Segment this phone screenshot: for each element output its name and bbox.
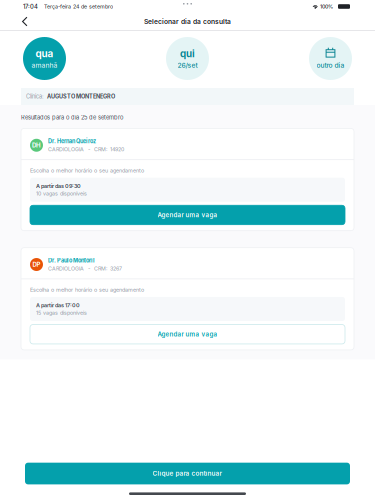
staticText: A partir das 17:00	[36, 302, 80, 308]
staticText: Clique para continuar	[152, 470, 222, 477]
staticText: amanhã	[31, 61, 57, 69]
button[interactable]: outro dia	[309, 37, 352, 80]
button[interactable]: qua amanhã	[23, 37, 66, 80]
button[interactable]: qui 26/set	[166, 37, 209, 80]
staticText: Dr. Paulo Montoril	[48, 257, 95, 264]
staticText: 10 vagas disponíveis	[36, 190, 87, 197]
staticText: A partir das 09:30	[36, 183, 81, 189]
button[interactable]: Voltar	[8, 13, 38, 29]
staticText: outro dia	[316, 61, 344, 69]
staticText: Escolha o melhor horário o seu agendamen…	[30, 286, 144, 293]
staticText: Selecionar dia da consulta	[144, 17, 231, 26]
staticText: DP	[32, 261, 40, 268]
staticText: Resultados para o dia 25 de setembro	[21, 114, 123, 121]
staticText: Escolha o melhor horário o seu agendamen…	[30, 167, 144, 174]
staticText: 15 vagas disponíveis	[36, 310, 87, 316]
staticText: Clínica:	[26, 93, 44, 100]
staticText: CARDIOLOGIA - CRM: 3267	[48, 265, 122, 272]
button[interactable]: Agendar uma vaga	[30, 205, 345, 225]
staticText: AUGUSTO MONTENEGRO	[47, 93, 115, 100]
staticText: Dr. Hernan Queiroz	[48, 138, 96, 145]
staticText: CARDIOLOGIA - CRM: 14920	[48, 146, 124, 153]
button[interactable]: Clique para continuar	[25, 463, 350, 484]
button[interactable]: Agendar uma vaga	[30, 324, 345, 344]
staticText: qui	[180, 48, 195, 60]
staticText: 26/set	[177, 61, 197, 69]
staticText: 17:04	[23, 3, 38, 10]
staticText: Agendar uma vaga	[157, 211, 217, 219]
staticText: DH	[32, 142, 41, 149]
staticText: 100%	[320, 3, 333, 10]
staticText: Terça-feira 24 de setembro	[44, 3, 113, 10]
staticText: Agendar uma vaga	[157, 330, 217, 338]
staticText: qua	[35, 48, 53, 60]
